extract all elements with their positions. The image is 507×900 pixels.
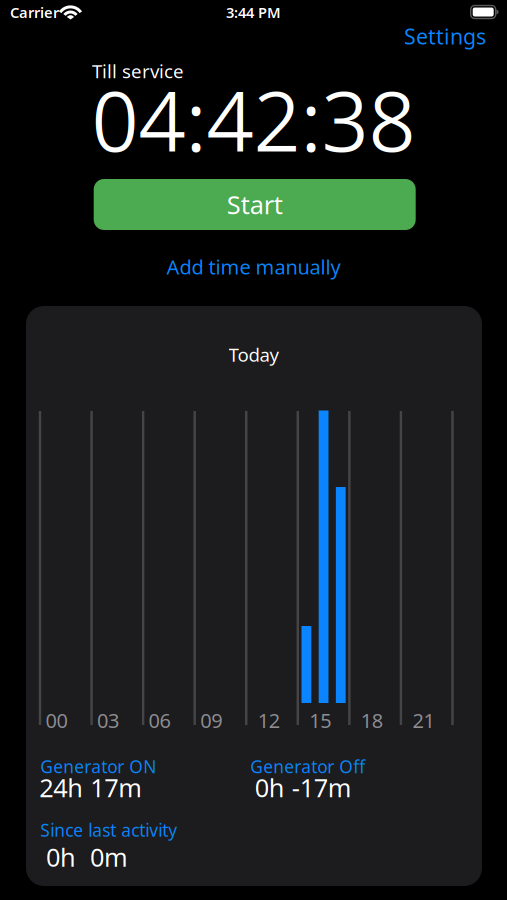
staticText: 18 (361, 707, 383, 734)
staticText: Till service (92, 58, 184, 83)
staticText: Start (227, 188, 283, 221)
staticText: 00 (45, 707, 67, 734)
staticText: Add time manually (166, 253, 340, 280)
staticText: Today (228, 342, 279, 367)
staticText: 12 (258, 707, 280, 734)
staticText: 21 (412, 707, 434, 734)
button[interactable]: Add time manually (166, 253, 340, 280)
staticText: 0h -17m (255, 771, 352, 804)
staticText: Settings (404, 22, 486, 50)
staticText: 06 (149, 707, 171, 734)
button[interactable]: Start (94, 179, 416, 230)
staticText: 15 (309, 707, 331, 734)
staticText: Carrier (10, 2, 59, 22)
button[interactable]: Settings (404, 22, 486, 50)
staticText: 09 (200, 707, 222, 734)
staticText: 24h 17m (39, 771, 142, 804)
staticText: Generator ON (40, 755, 156, 778)
staticText: Generator Off (250, 755, 365, 778)
staticText: 04:42:38 (91, 64, 415, 174)
staticText: Since last activity (40, 818, 177, 841)
staticText: 3:44 PM (226, 2, 281, 22)
staticText: 0h 0m (46, 840, 128, 874)
staticText: 03 (97, 707, 119, 734)
